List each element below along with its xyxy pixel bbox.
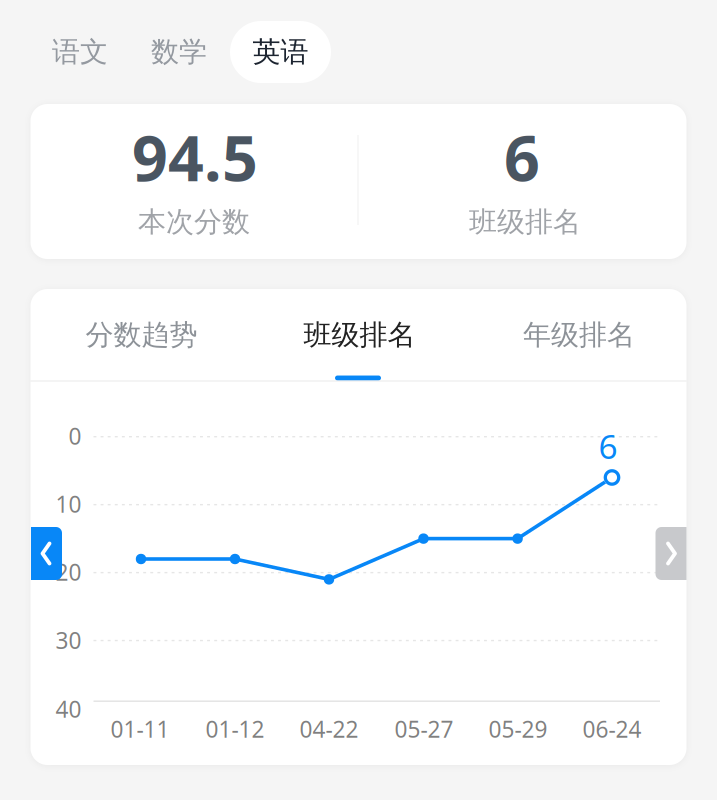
staticText: 班级排名 — [303, 318, 415, 352]
button[interactable]: 数学 — [129, 21, 229, 83]
staticText: 10 — [55, 489, 81, 519]
button[interactable]: 语文 — [30, 21, 130, 83]
button[interactable]: 班级排名 — [250, 289, 468, 381]
staticText: 01-12 — [205, 714, 264, 744]
staticText: 04-22 — [299, 714, 358, 744]
staticText: 06-24 — [582, 714, 641, 744]
staticText: 94.5 — [132, 115, 258, 199]
staticText: 01-11 — [110, 714, 169, 744]
staticText: 05-27 — [394, 714, 453, 744]
staticText: 20 — [55, 557, 81, 587]
button[interactable]: 年级排名 — [470, 289, 688, 381]
staticText: 班级排名 — [469, 205, 581, 239]
staticText: 40 — [55, 694, 81, 724]
staticText: 0 — [68, 421, 81, 451]
staticText: 分数趋势 — [85, 318, 197, 352]
staticText: 语文 — [52, 35, 108, 69]
staticText: 6 — [504, 115, 540, 199]
staticText: 6 — [598, 424, 617, 468]
staticText: 数学 — [151, 35, 207, 69]
staticText: 05-29 — [488, 714, 547, 744]
button[interactable]: Next exams — [655, 527, 686, 580]
button[interactable]: 英语 — [230, 21, 331, 83]
staticText: 本次分数 — [138, 205, 250, 239]
staticText: 年级排名 — [523, 318, 635, 352]
staticText: 30 — [55, 625, 81, 655]
staticText: 英语 — [252, 35, 308, 69]
button[interactable]: Previous exams — [31, 527, 62, 580]
button[interactable]: 分数趋势 — [32, 289, 250, 381]
